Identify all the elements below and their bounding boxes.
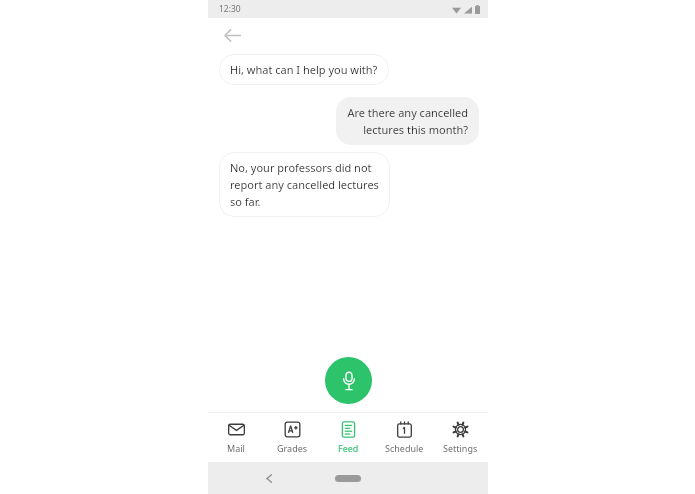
button[interactable]: Back [218, 21, 246, 49]
button[interactable]: Settings [432, 413, 488, 462]
button[interactable]: Back [258, 467, 280, 489]
staticText: Mail [227, 442, 245, 454]
staticText: Hi, what can I help you with? [230, 62, 378, 77]
button[interactable]: Are there any cancelled [336, 97, 479, 145]
staticText: report any cancelled lectures [230, 177, 379, 192]
button[interactable]: Grades [264, 413, 320, 462]
button[interactable]: No, your professors did not [219, 152, 390, 217]
staticText: lectures this month? [363, 122, 468, 137]
staticText: 12:30 [219, 3, 241, 15]
staticText: Are there any cancelled [347, 105, 468, 120]
button[interactable]: Schedule [376, 413, 432, 462]
staticText: so far. [230, 194, 261, 209]
button[interactable]: Feed [320, 413, 376, 462]
staticText: Settings [443, 442, 478, 454]
staticText: Schedule [385, 442, 424, 454]
staticText: Feed [338, 442, 359, 454]
button[interactable]: Voice input [325, 357, 372, 404]
button[interactable]: Mail [208, 413, 264, 462]
button[interactable]: Hi, what can I help you with? [219, 54, 389, 85]
staticText: Grades [277, 442, 308, 454]
staticText: No, your professors did not [230, 160, 372, 175]
button[interactable]: Home [335, 475, 361, 482]
